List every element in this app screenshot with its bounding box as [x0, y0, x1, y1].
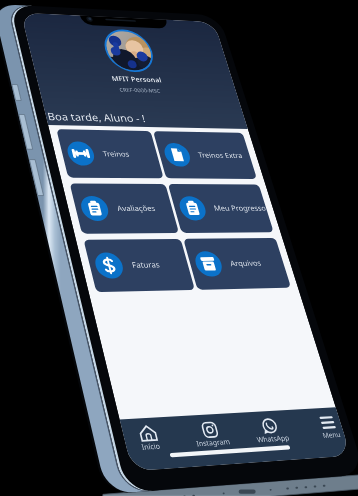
button[interactable] — [0, 0, 358, 496]
